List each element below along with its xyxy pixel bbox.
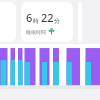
staticText: 睡眠時間 [26,29,46,35]
staticText: 時 [33,17,39,25]
button[interactable]: 6 [21,2,73,42]
button[interactable]: Sleep stages chart [0,44,100,89]
staticText: 分 [54,17,60,25]
staticText: 6 [26,10,33,25]
staticText: 22 [41,10,54,25]
